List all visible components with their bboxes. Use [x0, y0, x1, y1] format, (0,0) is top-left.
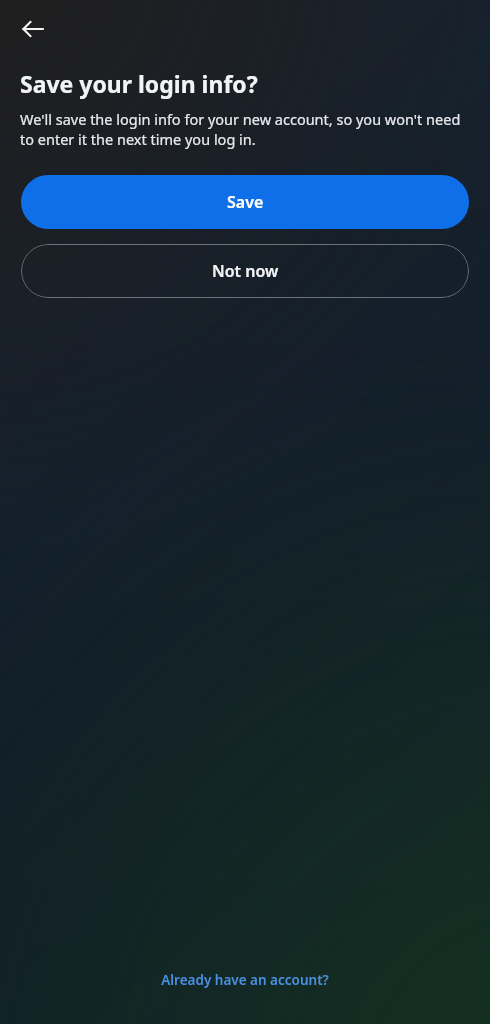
staticText: Save your login info? — [20, 68, 258, 99]
button[interactable]: Not now — [21, 244, 469, 298]
button[interactable]: Save — [21, 175, 469, 229]
button[interactable]: Back — [11, 7, 55, 51]
staticText: Already have an account? — [161, 971, 329, 989]
staticText: We'll save the login info for your new a… — [20, 109, 466, 150]
staticText: Save — [227, 191, 264, 213]
button[interactable]: Already have an account? — [0, 959, 490, 1001]
staticText: Not now — [212, 260, 279, 282]
